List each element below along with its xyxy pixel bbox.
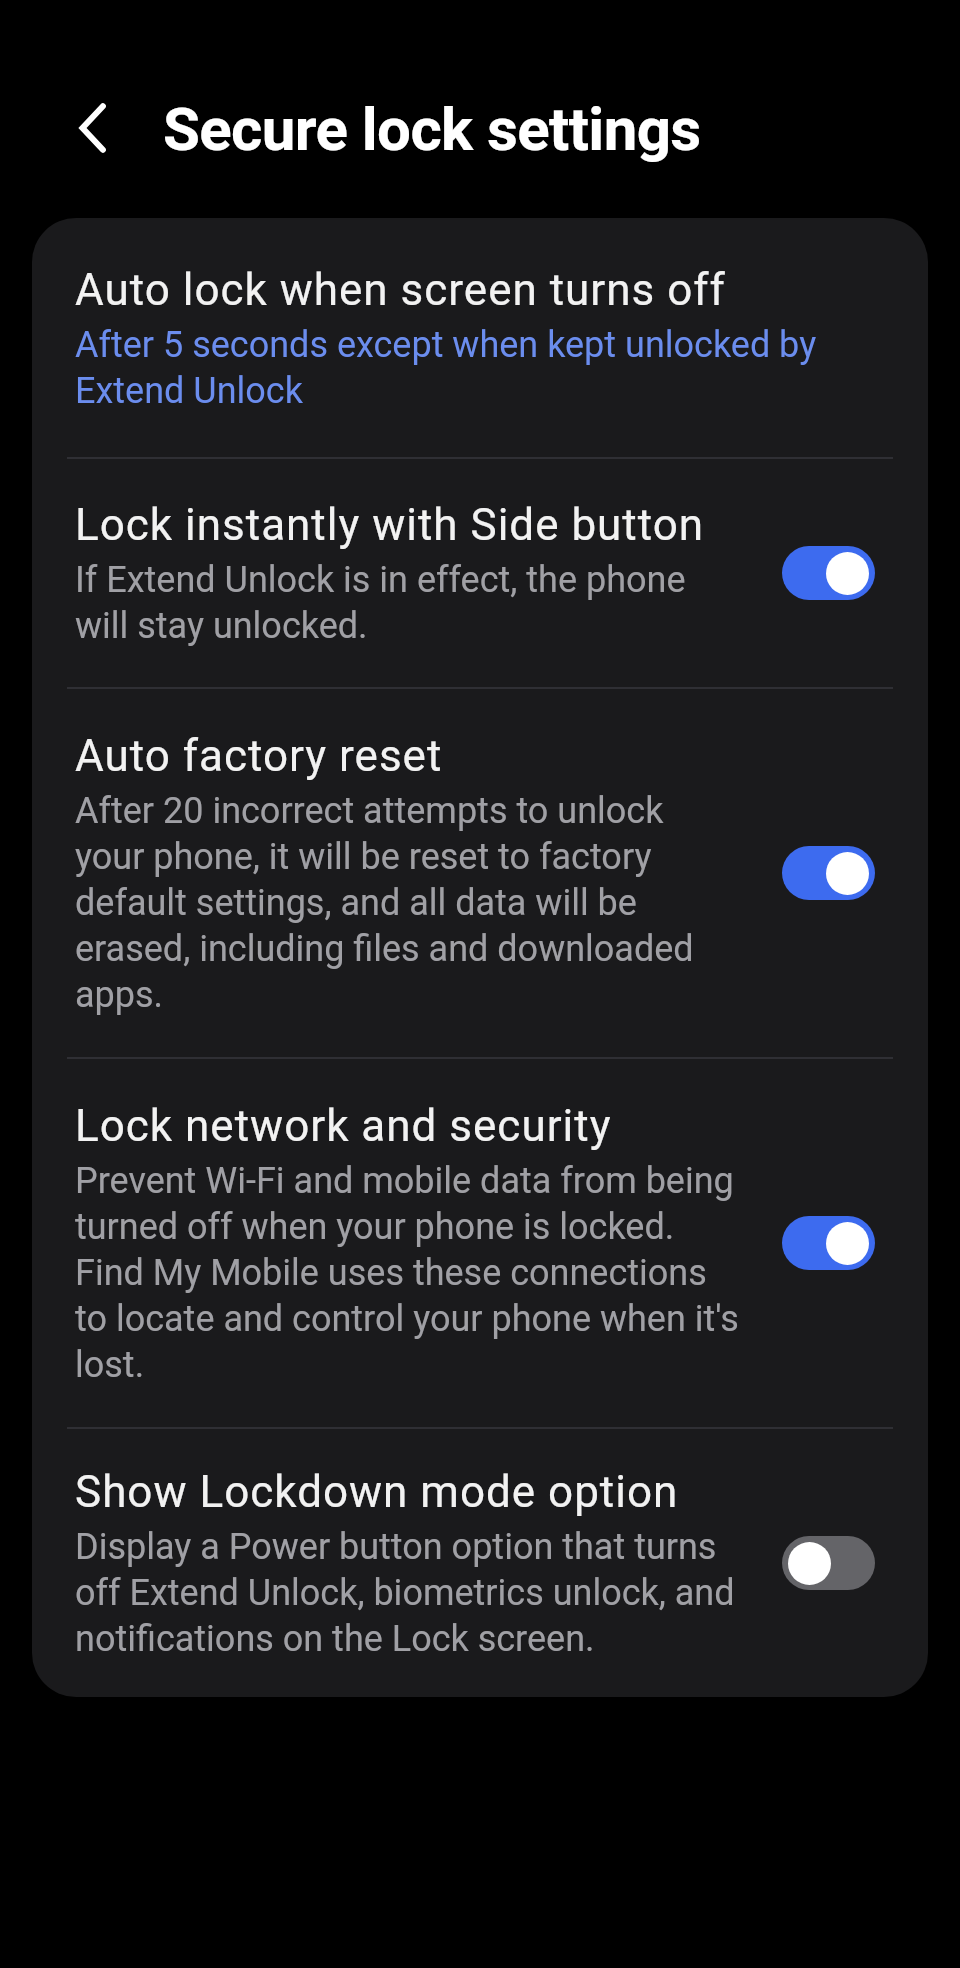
staticText: After 20 incorrect attempts to unlock yo… — [75, 790, 694, 1016]
button[interactable]: Auto lock when screen turns off — [32, 218, 928, 457]
staticText: If Extend Unlock is in effect, the phone… — [75, 559, 686, 647]
staticText: Auto lock when screen turns off — [75, 264, 726, 316]
staticText: Prevent Wi-Fi and mobile data from being… — [75, 1160, 739, 1386]
staticText: Display a Power button option that turns… — [75, 1526, 735, 1660]
button[interactable] — [782, 546, 875, 600]
staticText: After 5 seconds except when kept unlocke… — [75, 324, 817, 412]
button[interactable]: Show Lockdown mode option — [32, 1429, 928, 1697]
button[interactable]: Auto factory reset — [32, 689, 928, 1057]
button[interactable] — [58, 94, 126, 162]
button[interactable] — [782, 1536, 875, 1590]
button[interactable]: Lock instantly with Side button — [32, 459, 928, 687]
button[interactable] — [782, 1216, 875, 1270]
staticText: Auto factory reset — [75, 730, 443, 782]
staticText: Lock instantly with Side button — [75, 499, 705, 551]
staticText: Show Lockdown mode option — [75, 1466, 679, 1518]
staticText: Lock network and security — [75, 1100, 612, 1152]
button[interactable] — [782, 846, 875, 900]
button[interactable]: Lock network and security — [32, 1059, 928, 1427]
staticText: Secure lock settings — [163, 94, 701, 164]
